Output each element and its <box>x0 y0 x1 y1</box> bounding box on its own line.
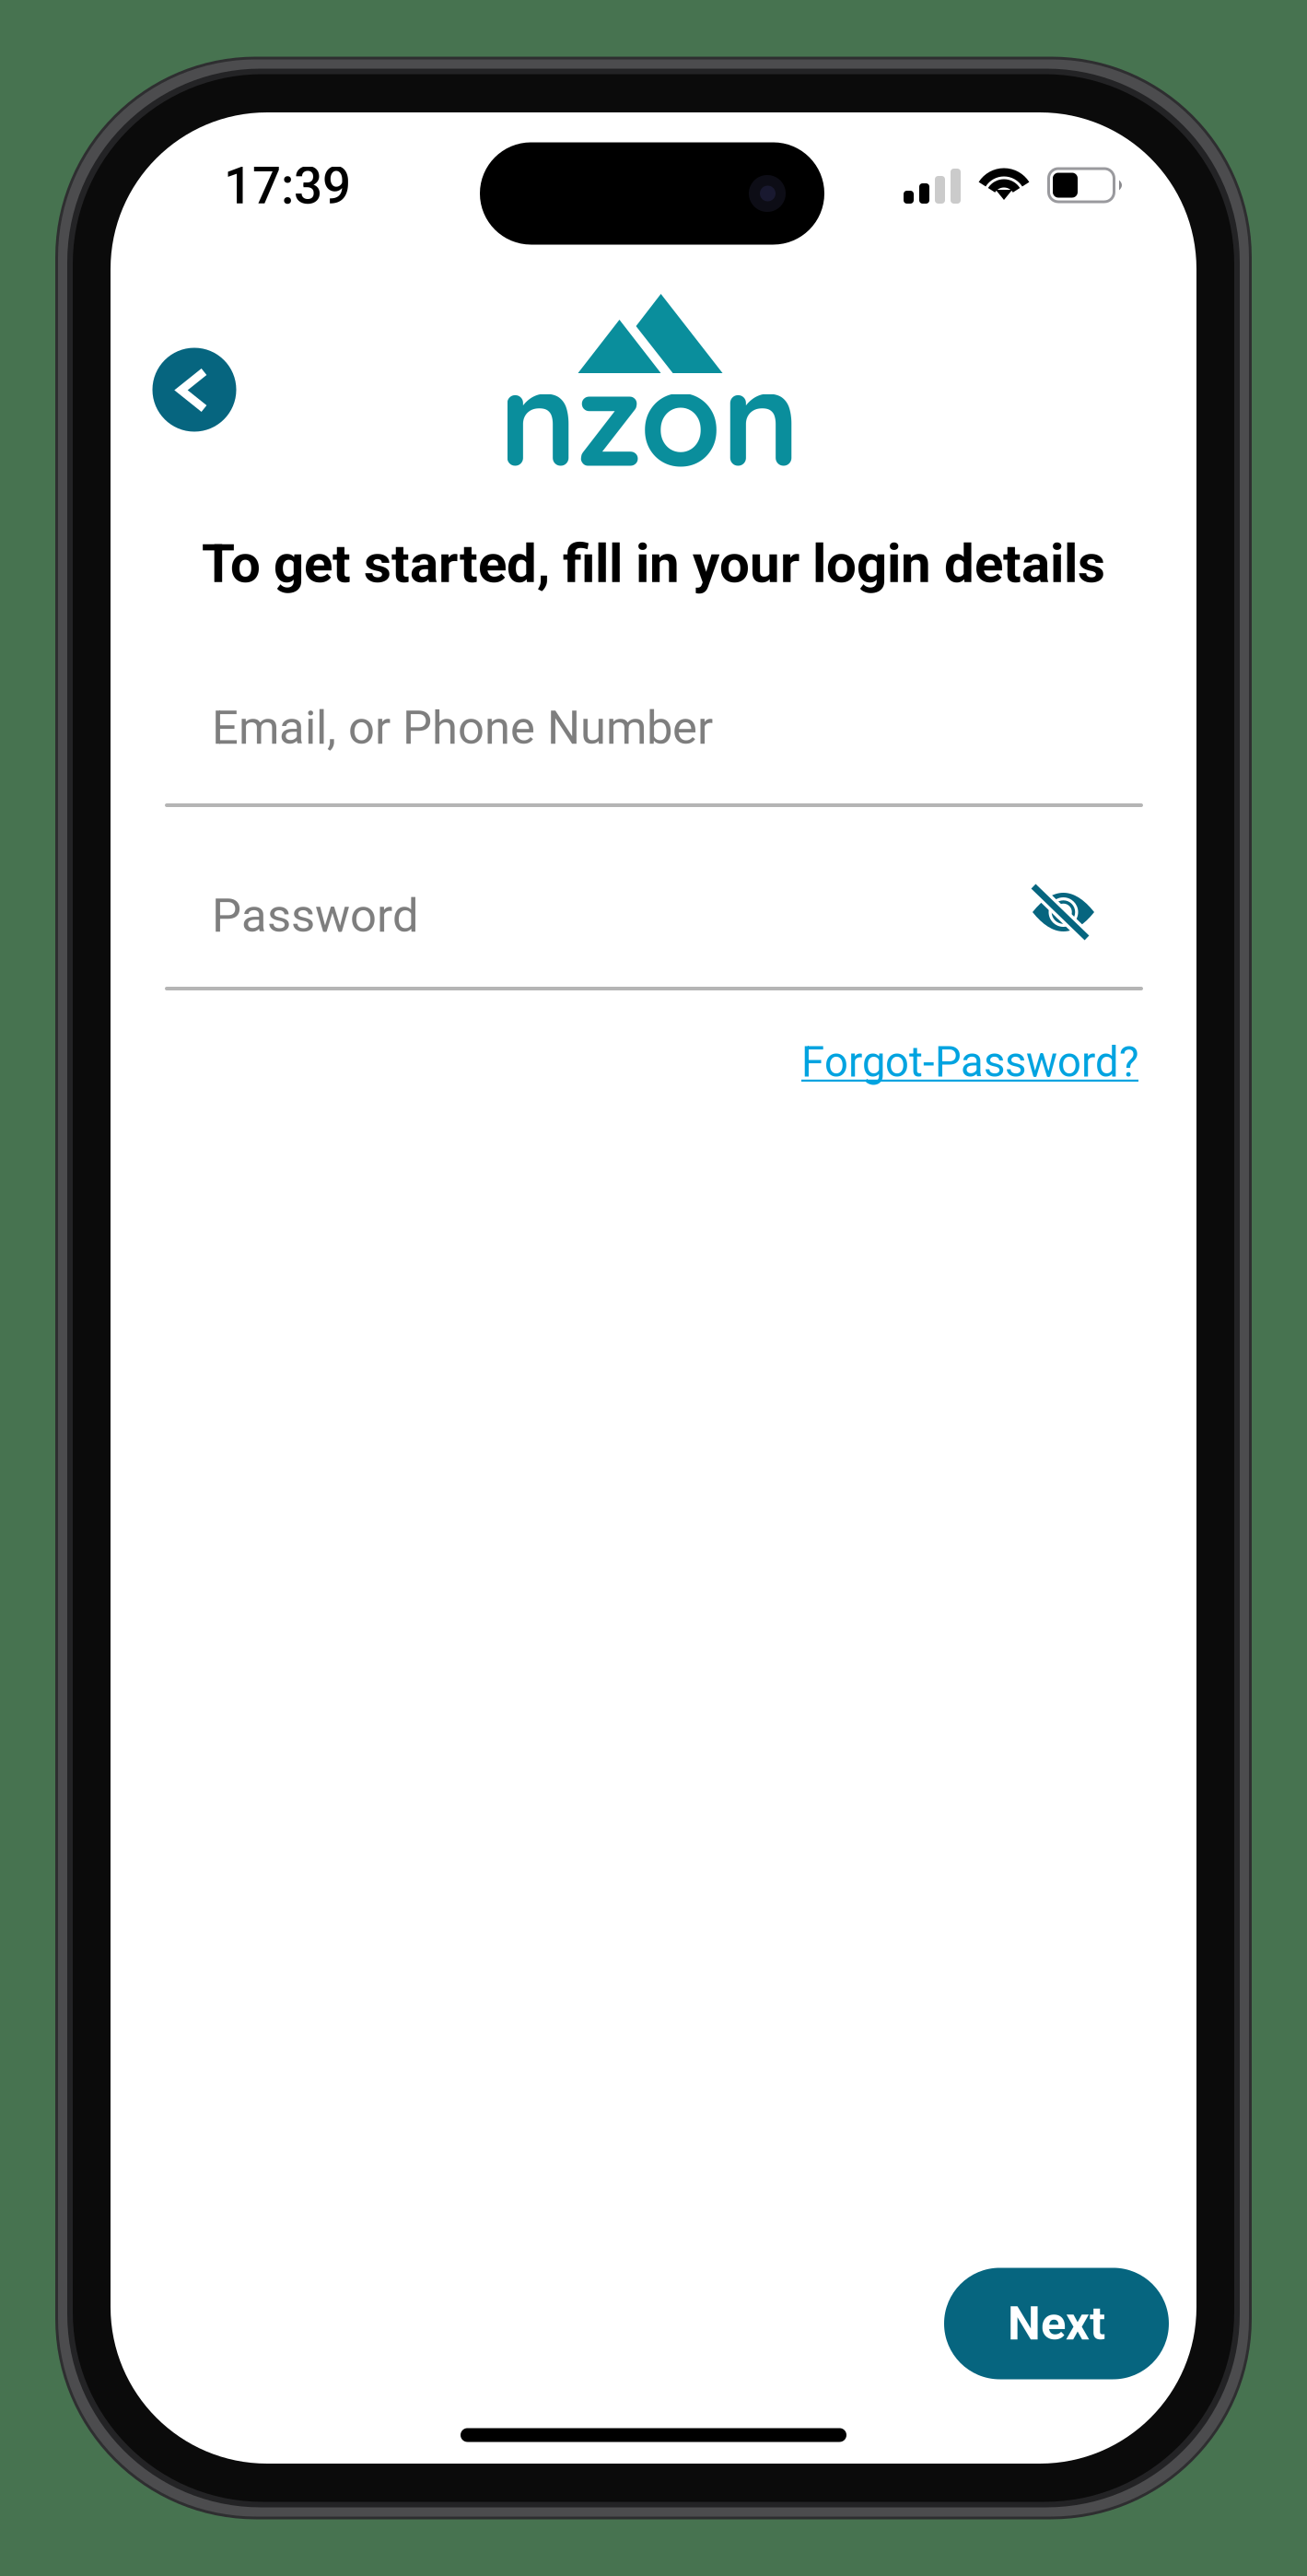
staticText: nzon <box>499 334 800 499</box>
button[interactable]: Show password <box>1018 868 1110 956</box>
staticText: Forgot-Password? <box>801 1038 1138 1087</box>
button[interactable]: Next <box>944 2268 1169 2379</box>
staticText: To get started, fill in your login detai… <box>202 532 1105 595</box>
button[interactable]: Back <box>152 348 236 432</box>
button[interactable]: Forgot-Password? <box>494 1038 1138 1087</box>
staticText: Next <box>1008 2296 1105 2351</box>
staticText: Email, or Phone Number <box>212 700 713 755</box>
staticText: 17:39 <box>224 157 351 216</box>
staticText: Password <box>212 888 419 943</box>
